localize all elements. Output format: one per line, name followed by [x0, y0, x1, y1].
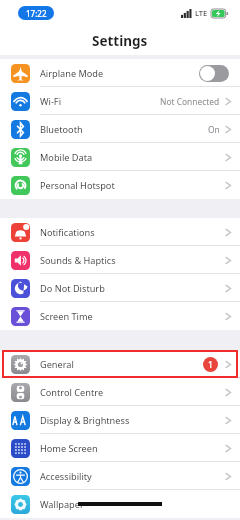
staticText: Mobile Data	[40, 151, 225, 164]
button[interactable]: Screen Time	[0, 302, 240, 330]
staticText: Bluetooth	[40, 123, 208, 136]
button[interactable]: General	[0, 350, 240, 378]
button[interactable]: Personal Hotspot	[0, 171, 240, 199]
staticText: Wi-Fi	[40, 95, 160, 108]
staticText: 1	[208, 359, 213, 371]
staticText: Display & Brightness	[40, 414, 225, 427]
staticText: Sounds & Haptics	[40, 254, 225, 267]
staticText: Notifications	[40, 226, 225, 239]
staticText: Wallpaper	[40, 498, 226, 511]
staticText: Do Not Disturb	[40, 282, 225, 295]
staticText: Accessibility	[40, 470, 225, 483]
button[interactable]: Notifications	[0, 218, 240, 246]
staticText: Not Connected	[160, 96, 220, 107]
button[interactable]: Home Screen	[0, 434, 240, 462]
staticText: Home Screen	[40, 442, 225, 455]
staticText: Screen Time	[40, 310, 225, 323]
button[interactable]: Sounds & Haptics	[0, 246, 240, 274]
button[interactable]: Airplane Mode	[0, 59, 240, 87]
button[interactable]: Wi-Fi	[0, 87, 240, 115]
button[interactable]: Mobile Data	[0, 143, 240, 171]
staticText: 17:22	[26, 8, 47, 19]
button[interactable]: Control Centre	[0, 378, 240, 406]
button[interactable]: Accessibility	[0, 462, 240, 490]
button[interactable]: Airplane Mode toggle	[199, 65, 229, 82]
staticText: Settings	[92, 32, 148, 50]
staticText: Personal Hotspot	[40, 179, 225, 192]
staticText: On	[208, 124, 220, 135]
button[interactable]: Wallpaper	[0, 490, 240, 518]
staticText: General	[40, 358, 203, 371]
button[interactable]: Do Not Disturb	[0, 274, 240, 302]
button[interactable]: Display & Brightness	[0, 406, 240, 434]
staticText: Airplane Mode	[40, 67, 199, 80]
button[interactable]: Bluetooth	[0, 115, 240, 143]
staticText: LTE	[195, 8, 208, 18]
staticText: Control Centre	[40, 386, 225, 399]
